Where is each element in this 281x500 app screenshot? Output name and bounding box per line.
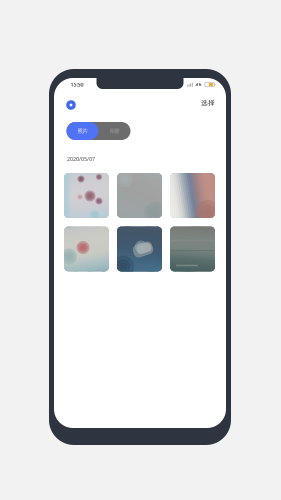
button[interactable]: Photo taken 2020/05/07	[117, 173, 162, 218]
button[interactable]: Photo taken 2020/05/07	[64, 226, 109, 271]
staticText: 选择	[201, 99, 215, 107]
button[interactable]: 相册	[98, 122, 130, 140]
button[interactable]: 照片	[66, 122, 98, 140]
button[interactable]: Photo taken 2020/05/07	[64, 173, 109, 218]
button[interactable]: Photo taken 2020/05/07	[170, 226, 215, 271]
button[interactable]: 选择	[197, 96, 219, 110]
staticText: 15:50	[70, 81, 83, 88]
staticText: 照片	[77, 128, 87, 134]
staticText: 相册	[109, 128, 119, 134]
button[interactable]: Photo taken 2020/05/07	[117, 226, 162, 271]
button[interactable]: Photo taken 2020/05/07	[170, 173, 215, 218]
button[interactable]: Camera	[61, 95, 81, 115]
staticText: 2020/05/07	[67, 155, 95, 163]
